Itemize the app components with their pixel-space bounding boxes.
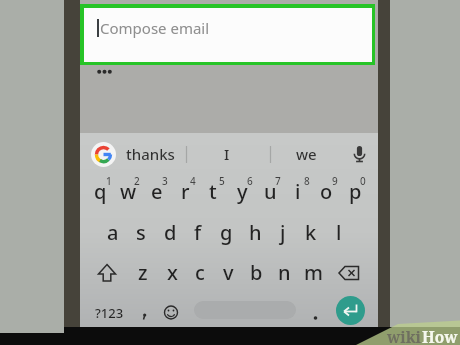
staticText: 2 (134, 174, 140, 186)
staticText: 7 (275, 174, 281, 186)
staticText: j (280, 219, 286, 246)
staticText: h (249, 219, 262, 246)
staticText: 4 (190, 174, 196, 186)
button[interactable]: i (284, 177, 312, 205)
staticText: 9 (332, 174, 338, 186)
button[interactable]: l (325, 218, 353, 246)
button[interactable]: x (158, 258, 186, 286)
button[interactable]: w (114, 177, 142, 205)
button[interactable]: d (156, 218, 184, 246)
staticText: ?123 (95, 304, 124, 322)
staticText: s (136, 219, 146, 246)
staticText: 6 (247, 174, 253, 186)
button[interactable]: s (127, 218, 155, 246)
button[interactable]: c (186, 258, 214, 286)
staticText: p (349, 178, 362, 205)
staticText: 3 (162, 174, 168, 186)
button[interactable]: n (270, 258, 298, 286)
staticText: b (250, 259, 263, 286)
button[interactable]: Compose email (80, 4, 375, 65)
staticText: 1 (106, 174, 112, 186)
staticText: m (304, 259, 323, 286)
staticText: e (151, 178, 163, 205)
button[interactable]: thanks (121, 141, 179, 167)
staticText: t (209, 178, 217, 205)
button[interactable]: b (242, 258, 270, 286)
button[interactable]: I (207, 141, 247, 167)
staticText: a (107, 219, 119, 246)
staticText: I (224, 144, 230, 164)
button[interactable] (93, 261, 121, 285)
button[interactable]: a (99, 218, 127, 246)
button[interactable]: p (341, 177, 369, 205)
staticText: wiki (387, 326, 422, 345)
staticText: o (320, 178, 333, 205)
staticText: l (336, 219, 342, 246)
button[interactable] (132, 301, 156, 325)
staticText: 0 (360, 174, 366, 186)
button[interactable]: r (171, 177, 199, 205)
button[interactable] (91, 142, 116, 167)
staticText: x (167, 259, 178, 286)
staticText: v (223, 259, 234, 286)
staticText: z (138, 259, 148, 286)
button[interactable]: h (241, 218, 269, 246)
staticText: k (305, 219, 317, 246)
button[interactable]: v (214, 258, 242, 286)
button[interactable]: we (286, 141, 326, 167)
button[interactable]: u (256, 177, 284, 205)
button[interactable]: o (312, 177, 340, 205)
staticText: u (264, 178, 277, 205)
staticText: f (194, 219, 202, 246)
staticText: we (296, 144, 317, 164)
button[interactable]: t (199, 177, 227, 205)
staticText: g (220, 219, 233, 246)
staticText: i (295, 178, 301, 205)
staticText: w (120, 178, 137, 205)
staticText: thanks (126, 144, 175, 164)
button[interactable]: j (269, 218, 297, 246)
button[interactable]: f (184, 218, 212, 246)
button[interactable]: e (143, 177, 171, 205)
button[interactable]: g (212, 218, 240, 246)
button[interactable] (336, 296, 365, 325)
button[interactable]: z (129, 258, 157, 286)
button[interactable] (304, 301, 326, 325)
staticText: y (237, 178, 248, 205)
staticText: q (94, 178, 107, 205)
staticText: How (422, 326, 458, 345)
button[interactable] (159, 301, 183, 325)
staticText: Compose email (100, 18, 210, 38)
button[interactable]: y (228, 177, 256, 205)
button[interactable]: ?123 (91, 301, 127, 325)
staticText: c (195, 259, 205, 286)
button[interactable]: q (86, 177, 114, 205)
button[interactable]: m (299, 258, 327, 286)
staticText: n (278, 259, 291, 286)
staticText: r (181, 178, 190, 205)
staticText: 8 (304, 174, 310, 186)
staticText: d (164, 219, 177, 246)
button[interactable] (335, 261, 365, 285)
staticText: 5 (219, 174, 225, 186)
button[interactable]: k (297, 218, 325, 246)
